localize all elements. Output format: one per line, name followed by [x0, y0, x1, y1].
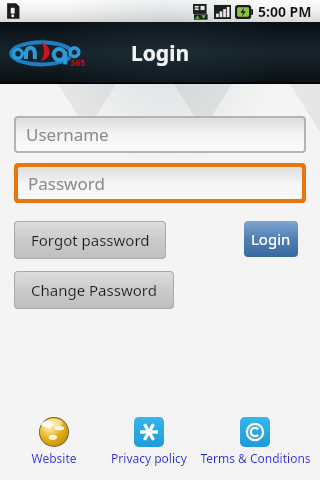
button[interactable]: Login — [244, 221, 298, 257]
staticText: Forgot password — [31, 230, 150, 250]
other: Terms and Conditions — [240, 417, 270, 447]
button[interactable]: Username — [16, 118, 304, 151]
button[interactable]: Password — [18, 167, 302, 199]
button[interactable]: Website — [6, 417, 101, 466]
staticText: 365 — [70, 56, 86, 68]
staticText: Change Password — [31, 280, 157, 300]
staticText: 5:00 PM — [258, 2, 312, 21]
staticText: Privacy policy — [111, 450, 187, 466]
button[interactable]: Terms and Conditions — [196, 417, 314, 466]
button[interactable]: Forgot password — [15, 222, 165, 258]
other: Privacy policy — [134, 417, 164, 447]
staticText: Terms & Conditions — [200, 450, 311, 466]
staticText: Password — [28, 172, 105, 195]
button[interactable]: Privacy policy — [101, 417, 196, 466]
staticText: Login — [131, 39, 190, 68]
staticText: Login — [251, 229, 291, 249]
button[interactable]: Change Password — [15, 272, 173, 308]
other: Website — [39, 417, 69, 447]
staticText: Website — [31, 450, 77, 466]
staticText: Username — [26, 123, 109, 146]
